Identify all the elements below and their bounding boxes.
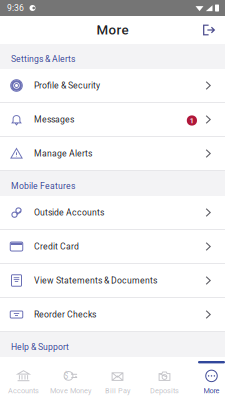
button[interactable]: Manage Alerts: [0, 137, 225, 171]
button[interactable]: Reorder Checks: [0, 298, 225, 332]
staticText: Manage Alerts: [34, 148, 92, 159]
staticText: Messages: [34, 114, 74, 125]
staticText: View Statements & Documents: [34, 275, 157, 286]
staticText: Bill Pay: [105, 386, 130, 395]
button[interactable]: Outside Accounts: [0, 196, 225, 230]
staticText: More: [96, 22, 128, 38]
staticText: Accounts: [8, 386, 39, 395]
button[interactable]: View Statements & Documents: [0, 264, 225, 298]
button[interactable]: $: [47, 361, 94, 400]
staticText: Help & Support: [11, 342, 69, 352]
staticText: $: [63, 371, 68, 381]
staticText: Deposits: [150, 386, 179, 395]
button[interactable]: Accounts: [0, 361, 47, 400]
button[interactable]: Profile & Security: [0, 69, 225, 103]
button[interactable]: Messages: [0, 103, 225, 137]
staticText: Credit Card: [34, 241, 79, 252]
staticText: Reorder Checks: [34, 309, 96, 320]
staticText: Mobile Features: [11, 181, 75, 191]
staticText: Move Money: [50, 386, 91, 395]
staticText: Profile & Security: [34, 80, 100, 91]
button[interactable]: Bill Pay: [94, 361, 141, 400]
button[interactable]: Deposits: [141, 361, 188, 400]
button[interactable]: Sign out: [196, 17, 222, 43]
staticText: 1: [189, 116, 194, 125]
button[interactable]: Credit Card: [0, 230, 225, 264]
button[interactable]: More: [188, 361, 225, 400]
staticText: Outside Accounts: [34, 207, 104, 218]
staticText: 9:36: [7, 3, 24, 13]
staticText: More: [203, 386, 219, 395]
staticText: Settings & Alerts: [11, 54, 75, 64]
